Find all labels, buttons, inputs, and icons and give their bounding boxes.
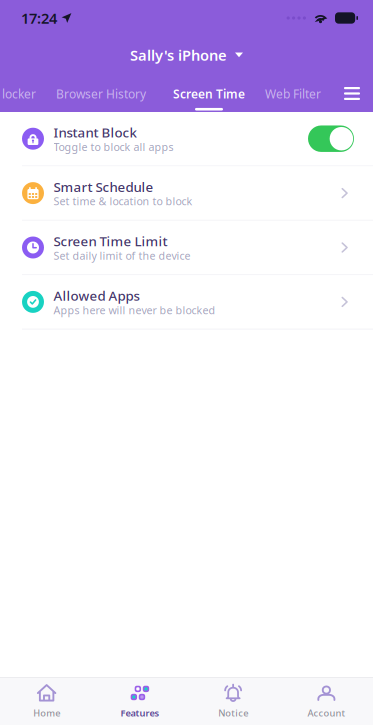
staticText: Features — [120, 707, 159, 719]
staticText: Set time & location to block — [53, 194, 192, 208]
button[interactable]: Notice — [186, 677, 280, 725]
staticText: Toggle to block all apps — [53, 140, 173, 154]
staticText: Apps here will never be blocked — [53, 303, 215, 317]
staticText: Set daily limit of the device — [53, 248, 190, 263]
button[interactable]: locker — [0, 74, 56, 110]
staticText: Instant Block — [53, 123, 136, 141]
button[interactable]: Allowed Apps — [0, 275, 373, 330]
staticText: Smart Schedule — [53, 178, 153, 196]
button[interactable]: Screen Time — [173, 74, 265, 110]
button[interactable]: Menu — [336, 74, 368, 110]
button[interactable]: Instant Block — [0, 112, 373, 166]
staticText: Screen Time Limit — [53, 232, 167, 250]
button[interactable]: Sally's iPhone — [130, 36, 243, 74]
staticText: 17:24 — [21, 8, 57, 28]
staticText: Allowed Apps — [53, 287, 139, 304]
staticText: Notice — [218, 707, 248, 719]
button[interactable]: Account — [280, 677, 373, 725]
button[interactable]: Features — [93, 677, 186, 725]
staticText: Browser History — [56, 86, 146, 102]
staticText: Sally's iPhone — [130, 45, 227, 65]
button[interactable]: Browser History — [56, 74, 173, 110]
staticText: Home — [33, 707, 60, 719]
button[interactable]: Web Filter — [265, 74, 321, 110]
staticText: Account — [307, 707, 345, 719]
staticText: Screen Time — [173, 86, 245, 102]
staticText: Web Filter — [265, 86, 321, 102]
button[interactable]: Screen Time Limit — [0, 221, 373, 275]
button[interactable]: Home — [0, 677, 93, 725]
button[interactable]: Smart Schedule — [0, 166, 373, 221]
staticText: locker — [2, 86, 36, 102]
